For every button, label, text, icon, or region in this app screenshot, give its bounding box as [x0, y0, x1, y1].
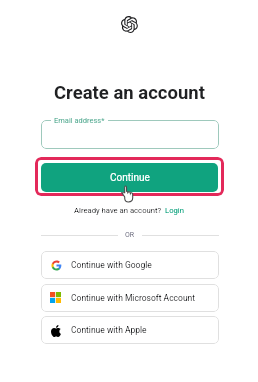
button[interactable]: Continue with Apple — [41, 316, 219, 344]
button[interactable]: Continue with Microsoft Account — [41, 284, 219, 312]
staticText: Email address* — [54, 116, 105, 125]
staticText: Create an account — [54, 82, 205, 104]
staticText: Continue — [110, 172, 150, 184]
staticText: Continue with Google — [71, 260, 152, 270]
staticText: Continue with Microsoft Account — [71, 293, 196, 303]
button[interactable]: Continue — [41, 163, 218, 192]
button[interactable] — [41, 120, 219, 149]
staticText: Already have an account? — [74, 206, 162, 215]
button[interactable]: Login — [165, 206, 184, 215]
staticText: Continue with Apple — [71, 325, 147, 335]
button[interactable]: Continue with Google — [41, 251, 219, 279]
staticText: OR — [125, 231, 135, 239]
